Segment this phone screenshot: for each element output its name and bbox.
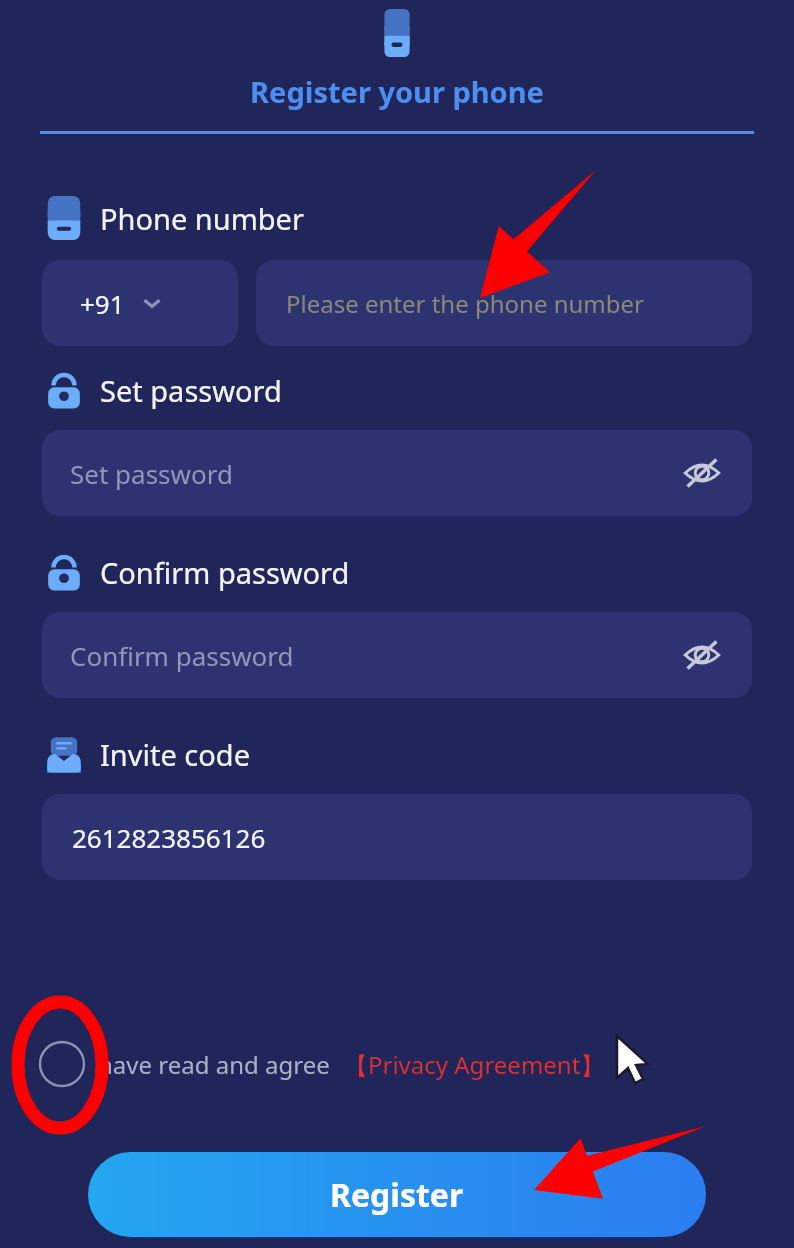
staticText: Set password	[70, 456, 233, 491]
staticText: Please enter the phone number	[286, 287, 645, 320]
button[interactable]: Confirm password	[42, 612, 752, 698]
staticText: 2612823856126	[72, 820, 266, 855]
button[interactable]: Show password	[682, 453, 722, 493]
staticText: have read and agree	[98, 1048, 330, 1081]
staticText: 【Privacy Agreement】	[344, 1048, 605, 1081]
button[interactable]: Show password	[682, 635, 722, 675]
button[interactable]: Agree checkbox	[38, 1036, 794, 1092]
staticText: Register your phone	[250, 72, 544, 111]
staticText: Register	[330, 1173, 464, 1217]
staticText: Confirm password	[100, 553, 350, 592]
button[interactable]: Register	[88, 1152, 706, 1237]
button[interactable]: Set password	[42, 430, 752, 516]
staticText: Invite code	[100, 735, 250, 774]
staticText: Confirm password	[70, 638, 294, 673]
staticText: Set password	[100, 371, 282, 410]
other: Agree checkbox	[38, 1040, 86, 1088]
button[interactable]: Please enter the phone number	[256, 260, 752, 346]
staticText: Phone number	[100, 199, 304, 238]
button[interactable]: +91	[42, 260, 238, 346]
staticText: +91	[80, 286, 125, 321]
button[interactable]: 2612823856126	[42, 794, 752, 880]
